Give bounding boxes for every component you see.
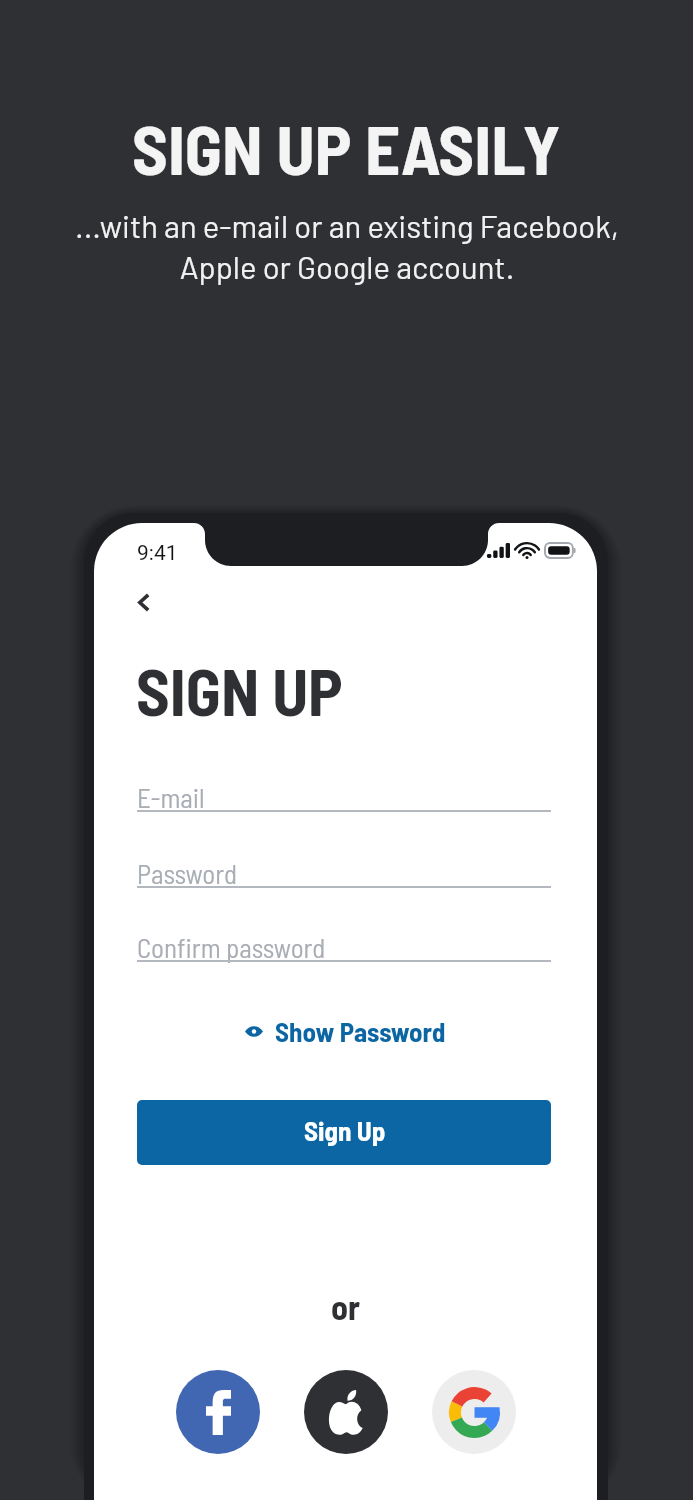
button[interactable]: Sign up with Apple: [304, 1370, 388, 1454]
staticText: SIGN UP: [136, 651, 343, 729]
staticText: Confirm password: [137, 931, 326, 963]
button[interactable]: Sign up with Google: [432, 1370, 516, 1454]
button[interactable]: Sign Up: [137, 1100, 551, 1165]
staticText: 9:41: [137, 541, 178, 566]
staticText: E-mail: [137, 781, 205, 813]
staticText: SIGN UP EASILY: [132, 106, 561, 189]
staticText: Show Password: [275, 1015, 446, 1047]
staticText: Sign Up: [304, 1114, 386, 1146]
button[interactable]: Show Password: [94, 1014, 597, 1048]
staticText: ...with an e-mail or an existing Faceboo…: [75, 207, 619, 285]
staticText: Password: [137, 857, 238, 889]
button[interactable]: Back: [122, 580, 166, 624]
button[interactable]: Sign up with Facebook: [176, 1370, 260, 1454]
staticText: or: [331, 1286, 361, 1327]
